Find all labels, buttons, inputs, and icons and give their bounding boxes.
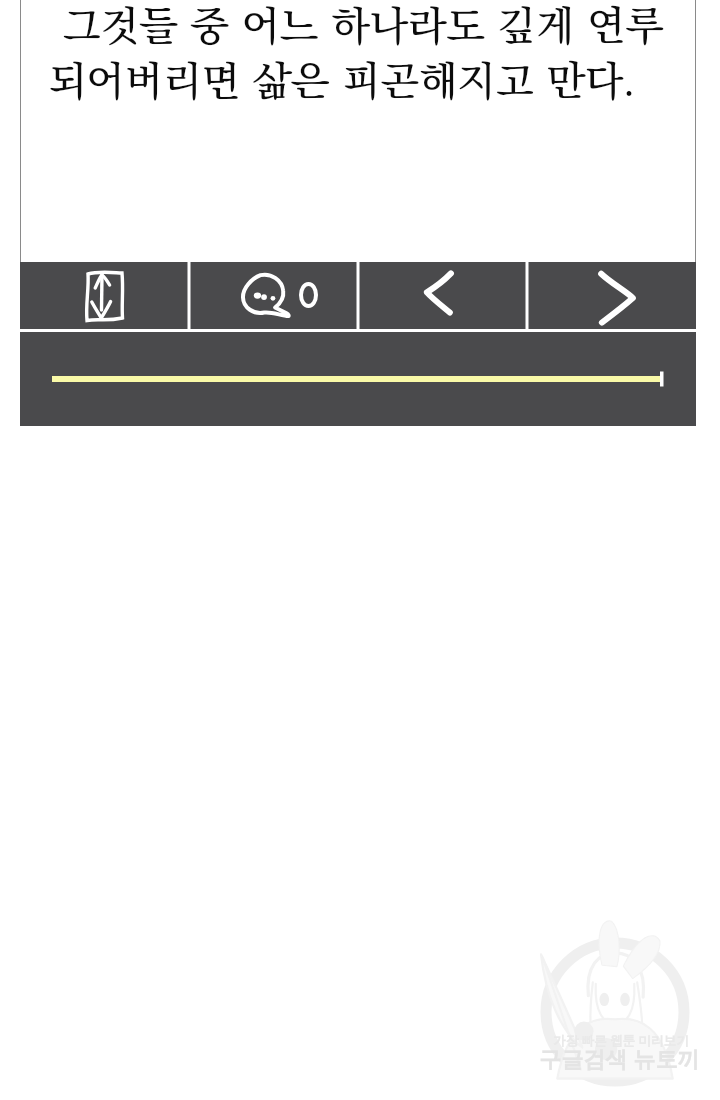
staticText: 되어버리면 삶은 피곤해지고 만다. — [4, 60, 680, 105]
button[interactable]: Scroll mode — [20, 262, 189, 329]
button[interactable]: Page progress — [20, 332, 696, 426]
staticText: 구글검색 뉴토끼 — [539, 1043, 700, 1073]
staticText: 그것들 중 어느 하나라도 깊게 연루 — [25, 5, 701, 50]
button[interactable]: Previous page — [358, 262, 527, 329]
staticText: 가장 빠른 웹툰 미리보기 — [553, 1032, 689, 1049]
button[interactable]: Next page — [527, 262, 696, 329]
button[interactable]: Comments — [189, 262, 358, 329]
